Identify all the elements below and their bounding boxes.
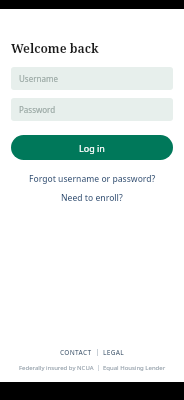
staticText: Federally insured by NCUA xyxy=(19,364,94,372)
button[interactable]: CONTACT xyxy=(60,348,92,357)
staticText: Log in xyxy=(79,142,105,154)
staticText: Welcome back xyxy=(11,40,99,56)
button[interactable]: Need to enroll? xyxy=(0,192,184,204)
staticText: Password xyxy=(19,104,56,115)
button[interactable]: Password xyxy=(11,98,173,121)
button[interactable]: Log in xyxy=(11,135,173,160)
staticText: Username xyxy=(19,73,58,84)
staticText: Equal Housing Lender xyxy=(103,364,166,372)
staticText: Need to enroll? xyxy=(61,192,123,204)
button[interactable]: Forgot username or password? xyxy=(0,173,184,185)
staticText: LEGAL xyxy=(103,348,125,357)
staticText: Forgot username or password? xyxy=(29,173,156,185)
staticText: CONTACT xyxy=(60,348,92,357)
button[interactable]: LEGAL xyxy=(103,348,125,357)
button[interactable]: Username xyxy=(11,67,173,90)
